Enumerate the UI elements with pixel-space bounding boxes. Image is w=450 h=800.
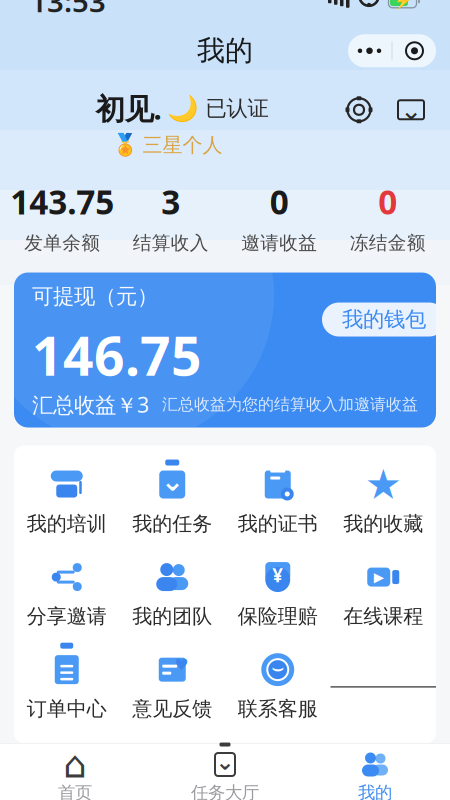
button[interactable]: 我的团队	[119, 560, 225, 629]
button[interactable]: ♥	[119, 653, 225, 721]
button[interactable]: 0	[333, 179, 442, 254]
staticText: 🏅	[111, 133, 138, 157]
button[interactable]: 3	[116, 179, 225, 254]
staticText: 初见.	[95, 89, 161, 128]
staticText: 任务大厅	[191, 782, 259, 800]
staticText: 我的团队	[132, 604, 212, 629]
button[interactable]: 菜单	[348, 34, 436, 67]
staticText: 我的任务	[132, 511, 212, 536]
staticText: 我的钱包	[342, 306, 426, 333]
staticText: 保险理赔	[238, 604, 318, 629]
button[interactable]: 143.75	[8, 179, 116, 254]
staticText: 汇总收益￥3	[32, 390, 149, 419]
button[interactable]: 分享邀请	[14, 560, 119, 629]
staticText: 在线课程	[343, 604, 423, 629]
button[interactable]: 我的钱包	[322, 302, 446, 336]
staticText: ⌣	[271, 658, 284, 678]
staticText: 订单中心	[27, 697, 107, 721]
staticText: ⚡	[393, 0, 411, 9]
staticText: 13:53	[30, 0, 106, 20]
staticText: ▶	[374, 569, 384, 585]
staticText: 首页	[58, 782, 92, 800]
staticText: 我的收藏	[343, 511, 423, 536]
staticText: 邀请收益	[241, 232, 317, 254]
staticText: 可提现（元）	[32, 283, 158, 309]
staticText: 分享邀请	[27, 604, 107, 629]
staticText: 汇总收益为您的结算收入加邀请收益	[162, 395, 418, 414]
staticText: 我的	[358, 782, 392, 800]
staticText: 0	[270, 179, 289, 224]
button[interactable]: 我的	[300, 752, 450, 800]
staticText: 结算收入	[133, 232, 209, 254]
button[interactable]: 订单中心	[14, 653, 119, 721]
button[interactable]: ¥	[225, 560, 330, 629]
staticText: 三星个人	[142, 133, 222, 157]
button[interactable]: ⌄	[150, 752, 300, 800]
staticText: 0	[378, 179, 397, 224]
button[interactable]: ★	[330, 467, 436, 536]
staticText: ⌂	[63, 743, 87, 786]
staticText: ⌄	[215, 749, 234, 775]
button[interactable]: 我的证书	[225, 467, 330, 536]
button[interactable]: ⌣	[225, 653, 330, 721]
button[interactable]: 0	[225, 179, 333, 254]
staticText: 🌙	[166, 94, 198, 123]
staticText: 已认证	[205, 95, 268, 121]
button[interactable]: 我的培训	[14, 467, 119, 536]
button[interactable]: ⌄	[119, 467, 225, 536]
staticText: ¥	[272, 563, 283, 587]
staticText: 我的培训	[27, 511, 107, 536]
staticText: ⌄	[400, 95, 422, 125]
staticText: 联系客服	[238, 697, 318, 721]
staticText: 我的证书	[238, 511, 318, 536]
staticText: 146.75	[32, 319, 202, 390]
staticText: ⌄	[161, 465, 184, 497]
button[interactable]: ⌂	[0, 752, 150, 800]
staticText: 意见反馈	[132, 697, 212, 721]
button[interactable]: ▶	[330, 560, 436, 629]
staticText: 我的	[197, 34, 253, 68]
staticText: 3	[161, 179, 180, 224]
staticText: 冻结金额	[350, 232, 426, 254]
button[interactable]: 设置	[344, 95, 374, 125]
staticText: ★	[365, 461, 402, 508]
staticText: 发单余额	[24, 232, 100, 254]
staticText: 143.75	[10, 179, 114, 224]
staticText: ♥	[174, 656, 188, 674]
button[interactable]: 消息	[396, 95, 426, 125]
